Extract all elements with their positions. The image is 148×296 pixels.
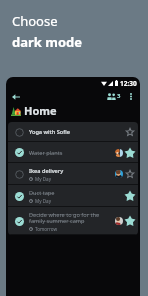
button[interactable]: Duct tape bbox=[8, 185, 138, 207]
button[interactable]: Favorite bbox=[126, 217, 134, 225]
button[interactable]: Shared with 3 people bbox=[107, 92, 121, 100]
button[interactable]: Favorite bbox=[126, 128, 134, 136]
button[interactable]: More options bbox=[126, 91, 136, 101]
staticText: Tomorrow bbox=[35, 226, 58, 232]
button[interactable]: Ikea delivery bbox=[8, 163, 138, 185]
button[interactable]: Favorite bbox=[126, 192, 134, 200]
staticText: Decide where to go for the family summer… bbox=[29, 211, 100, 225]
button[interactable]: Yoga with Sofie bbox=[8, 122, 138, 142]
staticText: Water plants bbox=[29, 149, 63, 157]
button[interactable]: Water plants bbox=[8, 142, 138, 163]
button[interactable]: Favorite bbox=[126, 149, 134, 157]
staticText: My Day bbox=[35, 198, 51, 204]
staticText: Ikea delivery bbox=[29, 167, 64, 175]
staticText: 12:30 bbox=[120, 79, 137, 88]
button[interactable]: Favorite bbox=[126, 170, 134, 178]
button[interactable]: Decide where to go for the family summer… bbox=[8, 207, 138, 235]
staticText: Yoga with Sofie bbox=[29, 128, 70, 136]
staticText: My Day bbox=[35, 176, 51, 182]
staticText: Duct tape bbox=[29, 189, 55, 197]
button[interactable]: Back bbox=[9, 90, 22, 103]
staticText: Choose bbox=[12, 12, 58, 30]
staticText: 3 bbox=[117, 92, 121, 100]
staticText: Home bbox=[24, 103, 57, 118]
staticText: dark mode bbox=[12, 33, 83, 51]
